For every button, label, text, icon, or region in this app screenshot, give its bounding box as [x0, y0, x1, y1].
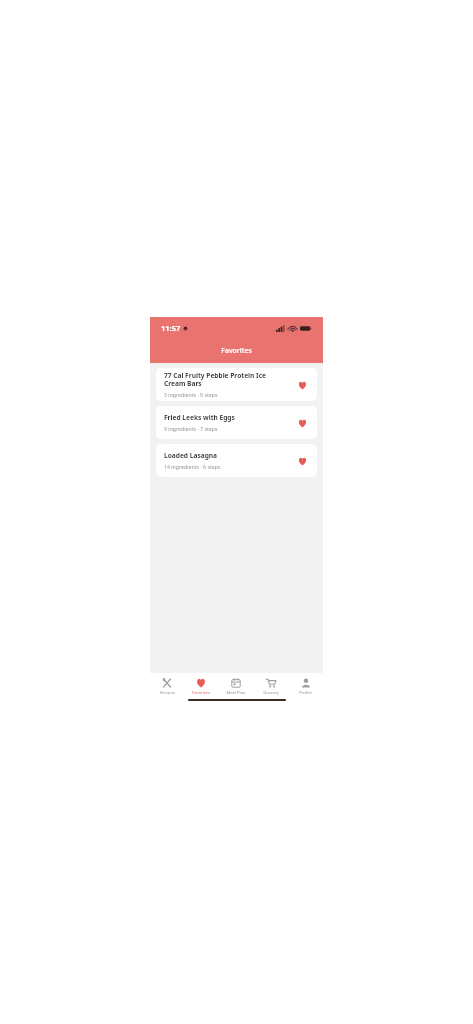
button[interactable]: Fried Leeks with Eggs — [156, 406, 317, 439]
button[interactable]: Meal Plan — [218, 676, 253, 698]
staticText: Fried Leeks with Eggs — [164, 413, 235, 422]
staticText: Profile — [299, 690, 312, 696]
staticText: 5 ingredients · 9 steps — [164, 391, 218, 398]
button[interactable]: Unfavorite — [295, 378, 309, 392]
staticText: Recipes — [160, 690, 175, 696]
staticText: Favorites — [150, 346, 323, 356]
staticText: Meal Plan — [226, 690, 246, 696]
button[interactable]: Favorites — [184, 676, 218, 698]
button[interactable]: Unfavorite — [295, 416, 309, 430]
staticText: 14 ingredients · 6 steps — [164, 463, 221, 470]
staticText: 77 Cal Fruity Pebble Protein Ice Cream B… — [164, 371, 289, 388]
button[interactable]: Loaded Lasagna — [156, 444, 317, 477]
button[interactable]: Profile — [288, 676, 323, 698]
button[interactable]: Grocery — [253, 676, 288, 698]
staticText: Favorites — [192, 690, 210, 696]
staticText: Loaded Lasagna — [164, 451, 218, 460]
staticText: Grocery — [263, 690, 279, 696]
button[interactable]: 77 Cal Fruity Pebble Protein Ice Cream B… — [156, 368, 317, 401]
button[interactable]: Unfavorite — [295, 454, 309, 468]
button[interactable]: Recipes — [150, 676, 184, 698]
staticText: 9 ingredients · 7 steps — [164, 425, 218, 432]
staticText: 11:57 — [161, 323, 181, 333]
